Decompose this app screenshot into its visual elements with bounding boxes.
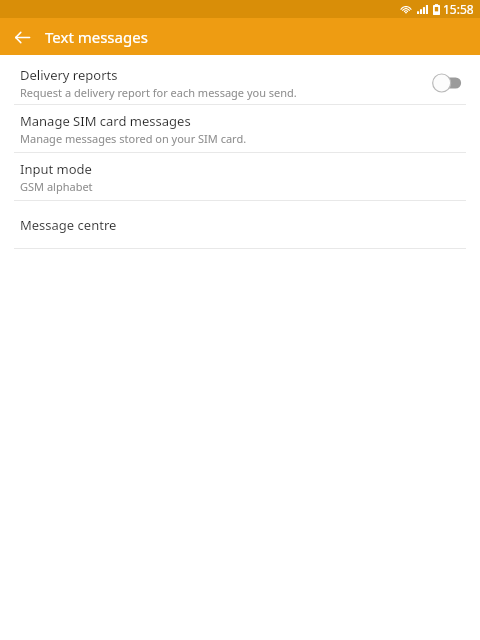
staticText: GSM alphabet [20,179,93,194]
button[interactable]: Delivery reports [0,61,480,104]
button[interactable]: Manage SIM card messages [0,105,480,152]
staticText: 15:58 [443,1,474,17]
staticText: Manage messages stored on your SIM card. [20,131,247,146]
staticText: Manage SIM card messages [20,112,191,130]
button[interactable]: Input mode [0,153,480,200]
staticText: Request a delivery report for each messa… [20,85,297,100]
staticText: Delivery reports [20,66,118,84]
staticText: Text messages [45,27,148,47]
button[interactable]: Back [7,22,37,52]
staticText: Message centre [20,216,117,234]
staticText: Input mode [20,160,92,178]
button[interactable]: Message centre [0,201,480,248]
button[interactable]: Delivery reports [432,73,466,93]
